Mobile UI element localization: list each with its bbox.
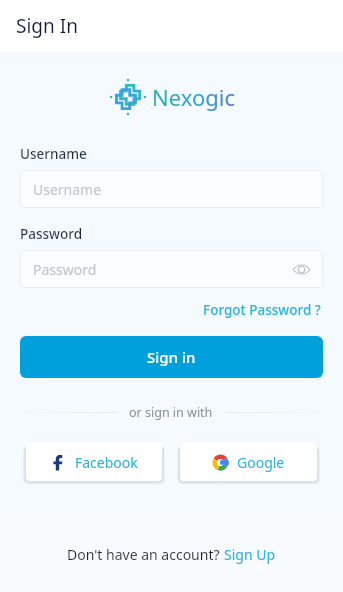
button[interactable]: Sign in — [20, 336, 323, 378]
button[interactable]: Don't have an account? — [63, 541, 280, 568]
button[interactable]: Show password — [290, 258, 312, 280]
staticText: Username — [20, 145, 87, 163]
staticText: Sign in — [147, 347, 196, 367]
button[interactable]: Username — [20, 170, 323, 208]
staticText: Facebook — [75, 453, 138, 472]
staticText: Sign In — [16, 13, 78, 39]
button[interactable]: Google — [180, 443, 317, 481]
button[interactable]: Password — [20, 250, 323, 288]
staticText: or sign in with — [129, 404, 213, 421]
staticText: Username — [33, 180, 102, 199]
button[interactable]: Facebook — [26, 443, 162, 481]
staticText: Google — [237, 453, 285, 472]
staticText: Nexogic — [152, 82, 235, 112]
staticText: Sign Up — [224, 545, 276, 564]
staticText: Don't have an account? — [67, 545, 224, 564]
staticText: Password — [20, 225, 83, 243]
staticText: Forgot Password ? — [203, 301, 321, 319]
staticText: Password — [33, 260, 97, 279]
button[interactable]: Forgot Password ? — [201, 298, 323, 322]
